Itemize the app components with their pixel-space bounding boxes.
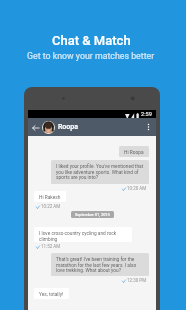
staticText: Chat & Match — [52, 33, 131, 48]
staticText: 11:52 AM — [41, 244, 61, 249]
button[interactable]: Hi Roopa — [119, 146, 149, 157]
staticText: Hi Rakesh — [39, 195, 61, 201]
button[interactable]: That's great! I've been training for the… — [51, 253, 149, 276]
staticText: I liked your profile. You've mentioned t… — [56, 164, 144, 180]
button[interactable]: I liked your profile. You've mentioned t… — [51, 160, 149, 184]
staticText: Yes, totally! — [39, 292, 64, 298]
staticText: 10:22 AM — [41, 204, 61, 209]
staticText: Get to know your matches better — [27, 51, 155, 61]
staticText: Hi Roopa — [124, 150, 144, 156]
button[interactable]: Yes, totally! — [34, 288, 69, 299]
staticText: 12:30 PM — [127, 278, 147, 283]
staticText: That's great! I've been training for the… — [56, 257, 144, 273]
staticText: I love cross-country cycling and rock cl… — [39, 231, 127, 242]
staticText: 10:20 AM — [127, 186, 147, 191]
button[interactable]: September 01, 2015 — [71, 211, 114, 218]
button[interactable]: Hi Rakesh — [34, 191, 66, 202]
button[interactable]: More options — [143, 122, 153, 132]
staticText: 2:59 — [141, 111, 152, 118]
button[interactable]: I love cross-country cycling and rock cl… — [34, 227, 132, 242]
staticText: September 01, 2015 — [75, 212, 110, 217]
button[interactable]: Back — [30, 122, 41, 133]
staticText: Roopa — [58, 123, 79, 131]
